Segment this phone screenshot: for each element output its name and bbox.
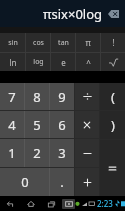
staticText: 9 [58, 88, 66, 106]
button[interactable]: cos [26, 33, 50, 52]
staticText: ln [9, 57, 17, 68]
button[interactable]: π [76, 33, 100, 52]
button[interactable]: ^ [76, 53, 100, 71]
button[interactable]: Home [24, 197, 38, 211]
button[interactable]: Back [4, 197, 18, 211]
staticText: ( [111, 88, 115, 106]
staticText: sin [8, 38, 18, 48]
staticText: 7 [8, 88, 16, 106]
staticText: π [85, 37, 91, 48]
staticText: 2:23 [97, 198, 113, 209]
button[interactable]: 9 [50, 83, 74, 110]
button[interactable]: ! [101, 33, 125, 52]
button[interactable]: Equals [100, 140, 125, 196]
button[interactable]: 8 [25, 83, 49, 110]
button[interactable]: ( [100, 83, 125, 110]
button[interactable]: Minus [75, 139, 99, 167]
button[interactable]: 1 [0, 139, 24, 167]
button[interactable]: sin [0, 33, 25, 52]
button[interactable] [101, 53, 125, 71]
staticText: 0 [21, 173, 29, 191]
button[interactable]: 2 [25, 139, 49, 167]
staticText: πsix×0log [43, 5, 103, 23]
staticText: ! [112, 37, 115, 48]
button[interactable]: Divide [75, 83, 99, 110]
staticText: 4 [8, 116, 16, 134]
staticText: 6 [58, 116, 66, 134]
button[interactable]: . [50, 168, 74, 196]
button[interactable]: Recent apps [44, 197, 58, 211]
button[interactable]: 5 [25, 111, 49, 138]
button[interactable]: Plus [75, 168, 99, 196]
staticText: 1 [8, 144, 16, 162]
button[interactable]: 3 [50, 139, 74, 167]
staticText: ^ [86, 57, 91, 68]
button[interactable]: Screenshot [62, 199, 75, 209]
staticText: . [60, 173, 64, 191]
button[interactable]: ) [100, 111, 125, 139]
button[interactable]: log [26, 53, 50, 71]
staticText: ) [111, 116, 115, 134]
button[interactable]: 6 [50, 111, 74, 138]
button[interactable]: ln [0, 53, 25, 71]
button[interactable]: 4 [0, 111, 24, 138]
staticText: 5 [33, 116, 41, 134]
button[interactable]: tan [51, 33, 75, 52]
button[interactable]: e [51, 53, 75, 71]
staticText: 2 [33, 144, 41, 162]
button[interactable]: Delete [107, 8, 120, 19]
staticText: 3 [58, 144, 66, 162]
button[interactable]: 7 [0, 83, 24, 110]
staticText: log [33, 57, 44, 67]
staticText: tan [58, 38, 69, 48]
button[interactable]: Multiply [75, 111, 99, 138]
staticText: e [61, 57, 66, 68]
button[interactable]: 0 [0, 168, 49, 196]
staticText: cos [33, 38, 44, 48]
staticText: 8 [33, 88, 41, 106]
